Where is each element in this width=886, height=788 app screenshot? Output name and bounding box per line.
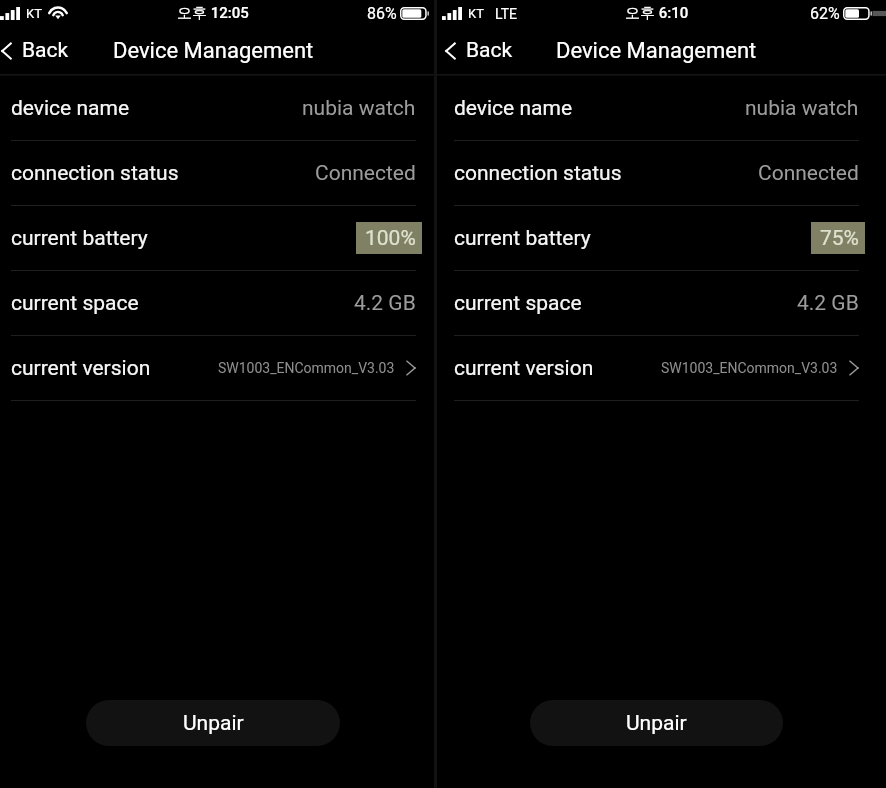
staticText: Connected [758, 161, 859, 186]
staticText: current version [454, 356, 594, 381]
button[interactable]: device name [11, 76, 416, 140]
button[interactable]: Unpair [86, 700, 340, 746]
staticText: 75% [820, 226, 859, 251]
staticText: current battery [454, 226, 591, 251]
other: Back [445, 41, 466, 61]
staticText: 오후 12:05 [177, 4, 249, 23]
staticText: 오후 6:10 [625, 4, 689, 23]
button[interactable]: connection status [11, 141, 416, 205]
staticText: 4.2 GB [354, 291, 416, 316]
staticText: current space [454, 291, 582, 316]
staticText: current space [11, 291, 139, 316]
button[interactable]: current battery [454, 206, 859, 270]
staticText: 62% [810, 4, 840, 23]
button[interactable]: Back [0, 27, 81, 74]
button[interactable]: current space [11, 271, 416, 335]
button[interactable]: device name [454, 76, 859, 140]
staticText: Connected [315, 161, 416, 186]
staticText: connection status [454, 161, 622, 186]
button[interactable]: current version [11, 336, 416, 400]
staticText: 100% [365, 226, 416, 251]
button[interactable]: Unpair [530, 700, 783, 746]
button[interactable]: current version [454, 336, 859, 400]
staticText: SW1003_ENCommon_V3.03 [218, 360, 395, 376]
staticText: Back [22, 38, 69, 63]
staticText: 4.2 GB [797, 291, 859, 316]
staticText: 86% [367, 4, 397, 23]
staticText: Device Management [113, 38, 314, 64]
button[interactable]: current battery [11, 206, 416, 270]
staticText: nubia watch [745, 96, 859, 121]
staticText: nubia watch [302, 96, 416, 121]
button[interactable]: Back [437, 27, 525, 74]
staticText: Back [466, 38, 513, 63]
staticText: KT [468, 6, 484, 21]
staticText: SW1003_ENCommon_V3.03 [661, 360, 838, 376]
staticText: KT [26, 6, 42, 21]
staticText: current battery [11, 226, 148, 251]
staticText: Device Management [556, 38, 757, 64]
button[interactable]: current space [454, 271, 859, 335]
staticText: Unpair [626, 711, 687, 736]
button[interactable]: connection status [454, 141, 859, 205]
staticText: device name [11, 96, 130, 121]
staticText: current version [11, 356, 151, 381]
staticText: connection status [11, 161, 179, 186]
staticText: Unpair [183, 711, 244, 736]
other: Back [1, 41, 22, 61]
staticText: LTE [495, 6, 517, 22]
staticText: device name [454, 96, 573, 121]
